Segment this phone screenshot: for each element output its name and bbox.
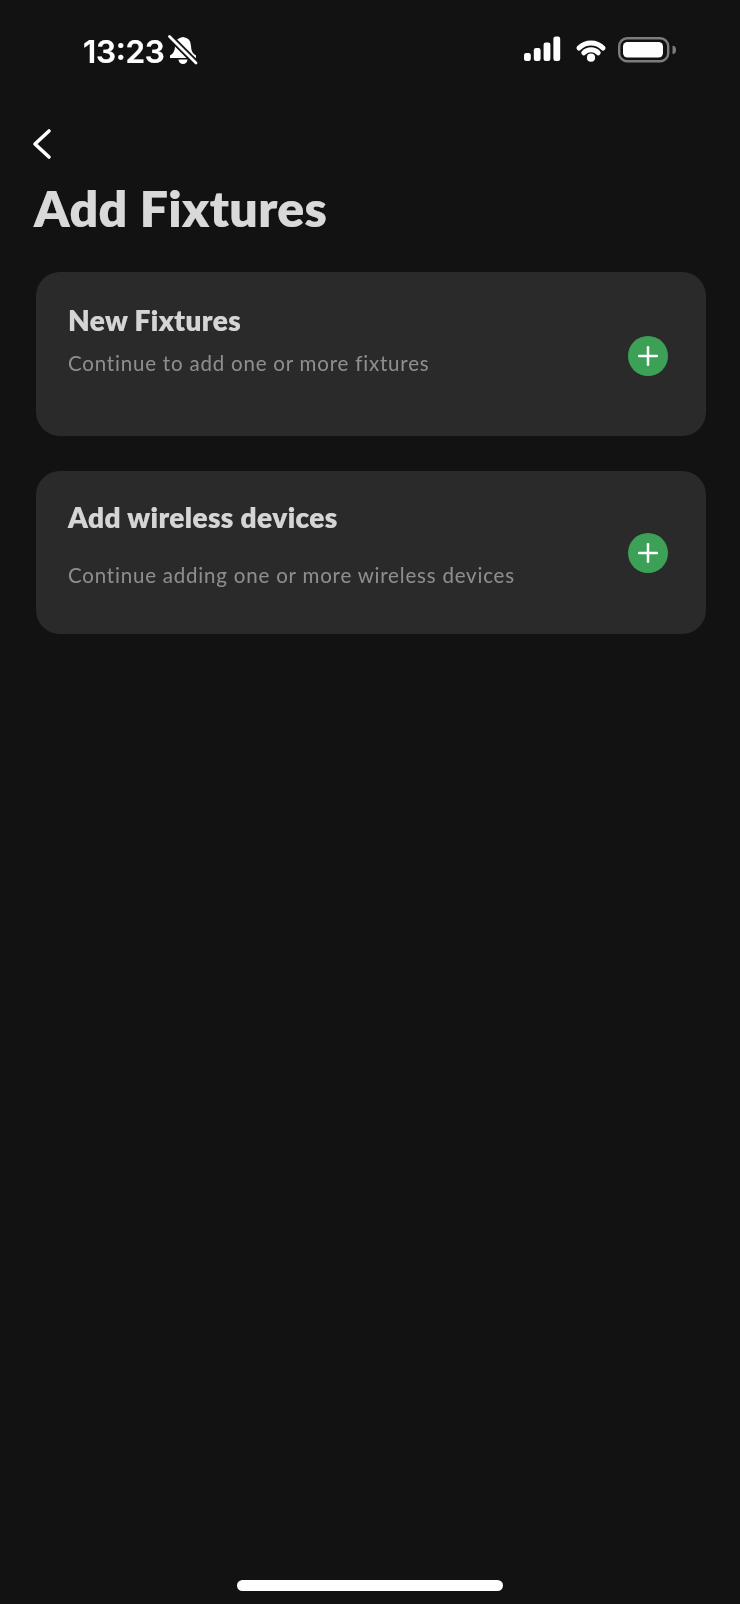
staticText: 13:23	[83, 32, 165, 70]
staticText: Add Fixtures	[34, 178, 328, 238]
button[interactable]	[628, 533, 668, 573]
staticText: Add wireless devices	[68, 500, 338, 534]
button[interactable]: New Fixtures	[36, 272, 706, 436]
button[interactable]	[14, 115, 70, 171]
staticText: Continue to add one or more fixtures	[68, 351, 430, 376]
button[interactable]: Add wireless devices	[36, 471, 706, 634]
button[interactable]	[628, 336, 668, 376]
staticText: Continue adding one or more wireless dev…	[68, 563, 515, 588]
staticText: New Fixtures	[68, 303, 242, 337]
